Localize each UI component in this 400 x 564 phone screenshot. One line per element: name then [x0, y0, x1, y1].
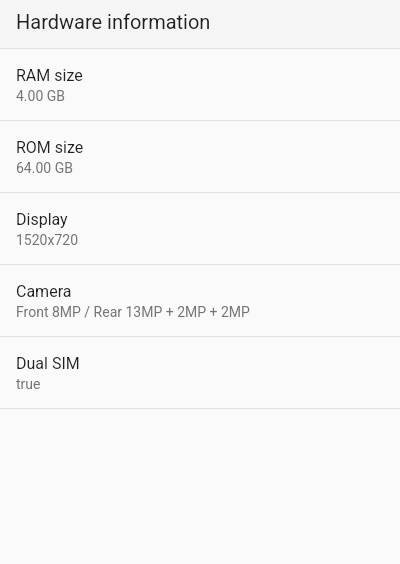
staticText: Hardware information — [16, 10, 211, 33]
staticText: true — [16, 376, 41, 392]
button[interactable]: Dual SIM — [0, 337, 400, 408]
staticText: Display — [16, 210, 68, 229]
staticText: Camera — [16, 282, 72, 301]
button[interactable]: Camera — [0, 265, 400, 336]
staticText: RAM size — [16, 66, 83, 85]
staticText: 1520x720 — [16, 232, 79, 248]
button[interactable]: RAM size — [0, 49, 400, 120]
staticText: 64.00 GB — [16, 160, 73, 176]
button[interactable]: ROM size — [0, 121, 400, 192]
staticText: ROM size — [16, 138, 84, 157]
staticText: 4.00 GB — [16, 88, 66, 104]
staticText: Front 8MP / Rear 13MP + 2MP + 2MP — [16, 304, 250, 320]
staticText: Dual SIM — [16, 354, 80, 373]
button[interactable]: Display — [0, 193, 400, 264]
